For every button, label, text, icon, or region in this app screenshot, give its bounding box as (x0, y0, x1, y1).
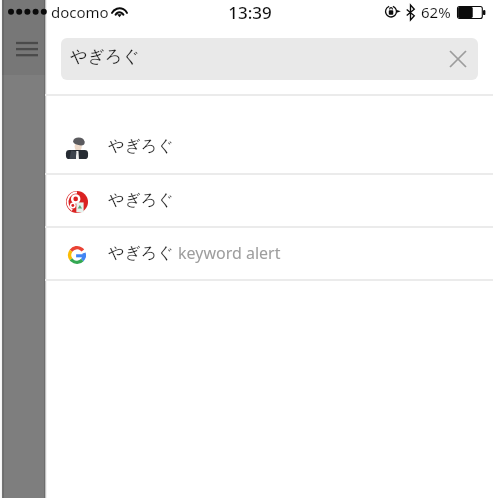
button[interactable]: やぎろぐ (61, 38, 478, 80)
staticText: やぎろぐ (108, 136, 174, 156)
staticText: やぎろぐ (108, 190, 174, 210)
staticText: 62% (421, 2, 451, 22)
staticText: docomo (51, 2, 109, 22)
staticText: keyword alert (178, 242, 281, 264)
staticText: 13:39 (0, 1, 500, 24)
button[interactable]: やぎろぐ (45, 121, 500, 174)
button[interactable]: Menu drawer (2, 0, 46, 498)
button[interactable]: やぎろぐ (45, 175, 500, 228)
other: Open navigation menu (16, 41, 38, 57)
staticText: やぎろぐ (70, 46, 140, 67)
button[interactable]: やぎろぐ (45, 228, 500, 281)
other: Clear search (450, 51, 466, 67)
staticText: やぎろぐ (108, 243, 174, 263)
